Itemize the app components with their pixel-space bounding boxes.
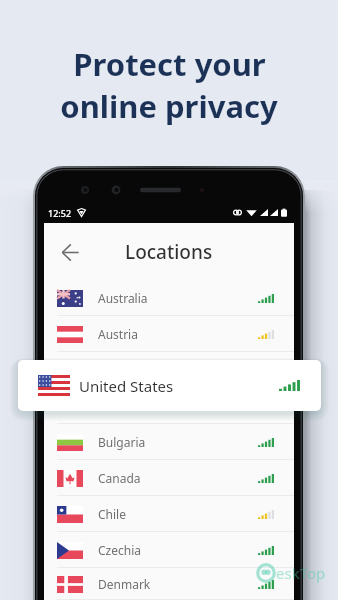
staticText: Austria [98,326,138,342]
button[interactable] [44,352,294,388]
button[interactable]: Austria [44,316,294,352]
staticText: Czechia [98,542,141,558]
staticText: eskTop [276,563,326,583]
staticText: Denmark [98,576,151,592]
button[interactable] [44,388,294,424]
staticText: Australia [98,290,148,306]
button[interactable]: Denmark [44,568,294,600]
button[interactable]: Bulgaria [44,424,294,460]
staticText: Chile [98,506,126,522]
staticText: Locations [125,239,213,265]
staticText: online privacy [60,85,278,127]
staticText: United States [79,376,174,396]
staticText: Canada [98,470,141,486]
button[interactable]: United States [18,360,321,411]
button[interactable]: Chile [44,496,294,532]
button[interactable]: Czechia [44,532,294,568]
button[interactable]: Canada [44,460,294,496]
staticText: Protect your [73,43,266,85]
staticText: 12:52 [48,207,72,219]
button[interactable]: Back [57,239,83,265]
staticText: Bulgaria [98,434,146,450]
button[interactable]: Australia [44,280,294,316]
